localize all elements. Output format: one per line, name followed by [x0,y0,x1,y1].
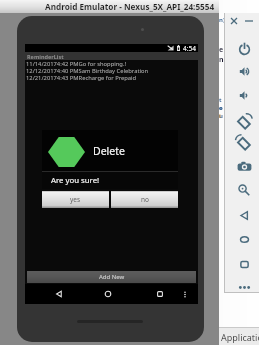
staticText: n) [219,16,225,24]
staticText: 12/12/20174:40 PMSam Birthday Celebratio… [26,67,149,74]
staticText: te [219,96,225,112]
button[interactable]: Close [227,14,240,27]
button[interactable]: Overview [233,254,255,274]
button[interactable]: Volume up [233,61,255,81]
button[interactable]: Take screenshot [233,156,255,176]
staticText: 11/14/20174:42 PMGo for shopping.! [26,60,127,67]
staticText: Are you sure! [51,175,100,186]
staticText: i [219,112,221,120]
button[interactable]: Recent apps [150,284,170,304]
button[interactable]: More options [177,284,193,304]
button[interactable]: 12/12/20174:40 PMSam Birthday Celebratio… [25,67,198,74]
button[interactable]: Volume down [233,85,255,105]
button[interactable]: 11/14/20174:42 PMGo for shopping.! [25,60,198,67]
staticText: 12/21/20174:43 PMRecharge for Prepaid [26,74,137,81]
button[interactable]: Back [233,205,255,225]
button[interactable]: Power [233,38,255,58]
button[interactable]: no [111,191,178,208]
button[interactable]: Add New [27,271,196,283]
staticText: Delete [93,144,125,158]
staticText: Application [221,331,259,343]
staticText: Add New [99,273,125,281]
staticText: en [219,45,225,65]
button[interactable]: 12/21/20174:43 PMRecharge for Prepaid [25,74,198,81]
staticText: yes [70,195,81,204]
button[interactable]: Extended controls [233,277,255,297]
staticText: 4:54 [183,44,196,52]
button[interactable]: Home [233,229,255,249]
staticText: no [141,195,149,204]
button[interactable]: yes [42,191,109,208]
staticText: Android Emulator - Nexus_5X_API_24:5554 [45,1,215,12]
button[interactable]: Back [49,284,69,304]
button[interactable]: Rotate left [233,111,255,131]
staticText: ReminderList [27,53,64,60]
button[interactable]: Minimize [242,14,255,27]
button[interactable]: Home [98,284,118,304]
button[interactable]: Zoom in [233,180,255,200]
staticText: ou [219,104,225,120]
button[interactable]: Rotate right [233,132,255,152]
